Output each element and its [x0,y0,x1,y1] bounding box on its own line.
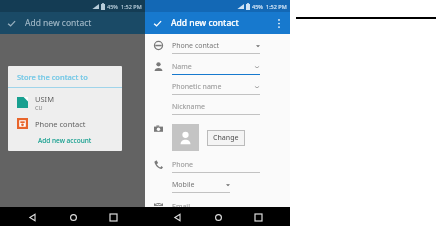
button[interactable]: Recents [104,208,122,226]
button[interactable]: Save [152,18,163,29]
button[interactable]: Phonetic name [172,82,260,95]
staticText: Phone [172,160,260,170]
staticText: Mobile [172,180,226,190]
staticText: Phone contact [172,41,256,51]
staticText: Phonetic name [172,82,254,92]
button[interactable]: Nickname [172,102,260,115]
button[interactable]: Back [168,208,186,226]
button[interactable]: Home [64,208,82,226]
button[interactable]: Contact photo [172,124,199,151]
staticText: Phone contact [35,119,86,129]
staticText: 45% [107,3,118,10]
staticText: 1:52 PM [266,3,287,10]
button[interactable]: Phone [172,160,260,173]
staticText: USIM [35,94,54,104]
button[interactable]: Add new account [8,133,122,151]
staticText: Add new account [38,136,92,145]
staticText: Nickname [172,102,260,112]
button[interactable]: Name [172,62,260,75]
button[interactable]: Back [23,208,41,226]
button[interactable]: Recents [249,208,267,226]
staticText: 45% [252,3,263,10]
staticText: Email [172,202,260,207]
staticText: Store the contact to [17,72,88,82]
button[interactable]: Home [209,208,227,226]
button[interactable]: USIM [8,88,122,114]
button[interactable]: Change [207,130,245,146]
staticText: Add new contact [25,17,92,29]
button[interactable]: More options [273,17,285,29]
staticText: CU [35,104,43,111]
staticText: Name [172,62,254,72]
button[interactable]: Mobile [172,180,230,193]
staticText: 1:52 PM [121,3,142,10]
staticText: Change [213,133,239,143]
button[interactable]: Phone contact [172,41,260,54]
button[interactable]: Phone contact [8,114,122,133]
button[interactable]: Email [172,202,260,207]
staticText: Add new contact [171,17,273,29]
